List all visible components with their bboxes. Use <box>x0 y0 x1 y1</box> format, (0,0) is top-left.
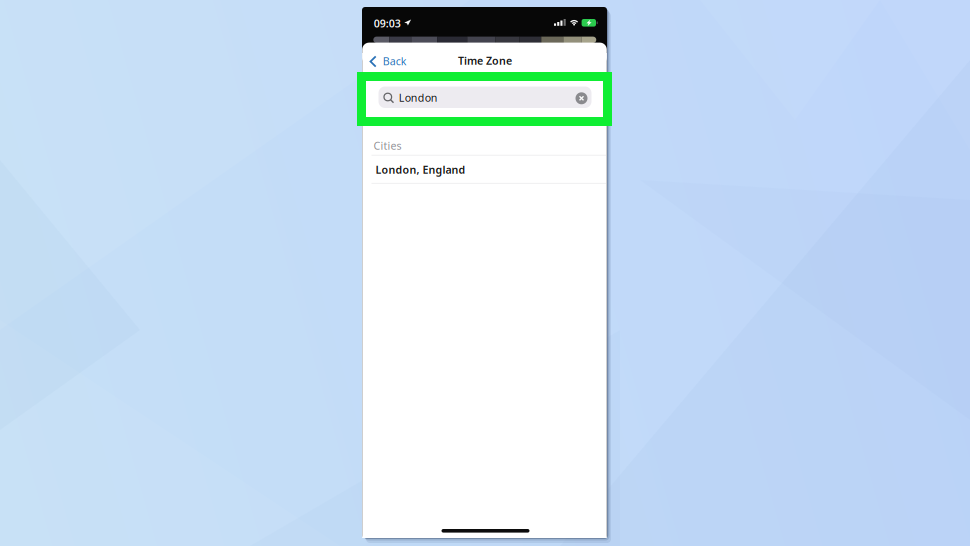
button[interactable]: Back <box>362 49 408 73</box>
staticText: Time Zone <box>458 53 512 68</box>
staticText: Cities <box>373 138 401 153</box>
staticText: Back <box>383 54 407 68</box>
staticText: London <box>399 90 438 105</box>
staticText: 09:03 <box>374 16 401 30</box>
button[interactable]: London <box>378 86 591 108</box>
staticText: London, England <box>375 162 465 177</box>
